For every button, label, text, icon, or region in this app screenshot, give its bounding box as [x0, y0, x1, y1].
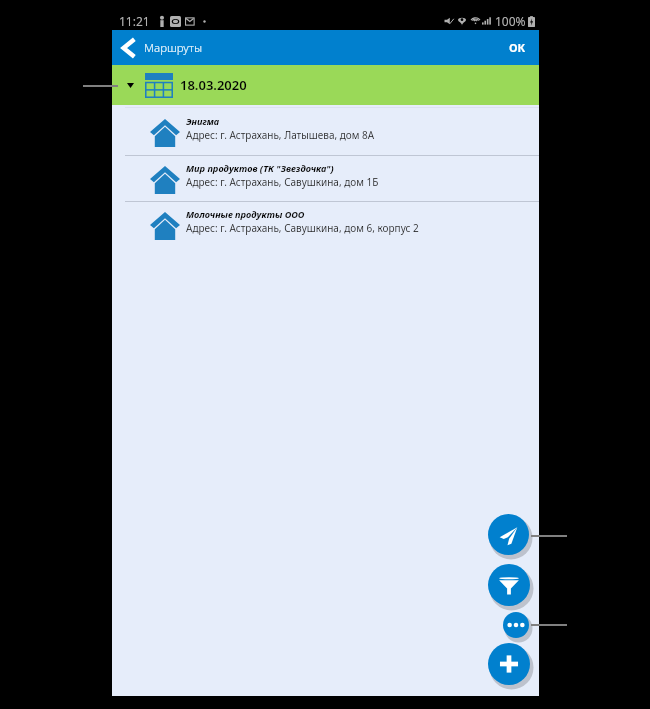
- staticText: Адрес: г. Астрахань, Латышева, дом 8А: [186, 128, 375, 142]
- staticText: Молочные продукты ООО: [186, 208, 305, 221]
- staticText: Адрес: г. Астрахань, Савушкина, дом 6, к…: [186, 221, 419, 235]
- button[interactable]: Молочные продукты ООО: [112, 202, 539, 247]
- staticText: 100%: [495, 13, 526, 29]
- button[interactable]: Add: [488, 643, 530, 685]
- staticText: 18.03.2020: [180, 76, 247, 94]
- button[interactable]: Back: [112, 30, 144, 65]
- button[interactable]: ОК: [495, 30, 539, 65]
- staticText: 11:21: [119, 13, 150, 29]
- staticText: Энигма: [186, 115, 220, 128]
- button[interactable]: Navigate: [488, 514, 529, 555]
- staticText: ОК: [509, 40, 526, 55]
- staticText: Маршруты: [144, 40, 203, 56]
- staticText: Мир продуктов (ТК "Звездочка"): [186, 162, 334, 175]
- button[interactable]: Энигма: [112, 108, 539, 155]
- button[interactable]: Filter: [488, 564, 530, 606]
- staticText: Адрес: г. Астрахань, Савушкина, дом 1Б: [186, 175, 379, 189]
- button[interactable]: Мир продуктов (ТК "Звездочка"): [112, 156, 539, 201]
- button[interactable]: More options: [503, 612, 529, 638]
- button[interactable]: 18.03.2020: [112, 65, 539, 105]
